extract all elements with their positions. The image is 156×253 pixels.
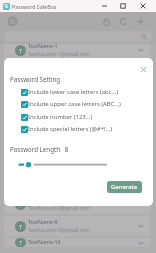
staticText: Password Length 8: [10, 145, 69, 153]
staticText: Include lower case letters (abc...): [28, 88, 119, 96]
button[interactable]: T: [4, 84, 150, 104]
staticText: TestName-1: [28, 44, 58, 49]
staticText: Password Setting: [10, 75, 61, 83]
staticText: Include special letters (@#*!...): [28, 125, 112, 133]
staticText: TestName-5: [28, 130, 58, 137]
staticText: Generate: [111, 183, 138, 191]
button[interactable]: Maximize: [113, 0, 133, 12]
button[interactable]: T: [4, 194, 150, 214]
button[interactable]: T: [4, 128, 150, 148]
staticText: Include upper case letters (ABC...): [28, 100, 121, 108]
staticText: T: [19, 223, 23, 230]
button[interactable]: Add: [132, 13, 149, 30]
staticText: TestAccount-4@gmail.com: [28, 117, 90, 124]
button[interactable]: T: [4, 216, 150, 236]
button[interactable]: Include lower case letters (abc...): [21, 88, 122, 96]
button[interactable]: T: [4, 44, 150, 60]
button[interactable]: Lock: [98, 13, 115, 30]
button[interactable]: T: [4, 172, 150, 192]
staticText: TestAccount-1@gmail.com: [28, 51, 90, 58]
staticText: T: [19, 47, 23, 54]
staticText: T: [19, 201, 23, 208]
staticText: T: [19, 91, 23, 98]
button[interactable]: Generate: [107, 181, 142, 193]
staticText: T: [19, 239, 23, 246]
button[interactable]: Minimize: [96, 0, 113, 12]
staticText: T: [19, 157, 23, 164]
button[interactable]: T: [4, 150, 150, 170]
button[interactable]: Settings: [4, 13, 21, 30]
staticText: TestAccount-8@gmail.com: [28, 205, 90, 212]
staticText: Include number (123...): [28, 113, 93, 121]
button[interactable]: Close: [138, 64, 149, 75]
staticText: T: [19, 113, 23, 120]
button[interactable]: Include special letters (@#*!...): [21, 125, 115, 133]
button[interactable]: Refresh: [115, 13, 132, 30]
button[interactable]: T: [4, 238, 150, 247]
staticText: TestAccount-2@gmail.com: [28, 73, 90, 80]
staticText: TestName-6: [28, 152, 58, 159]
button[interactable]: Include number (123...): [21, 113, 96, 121]
button[interactable]: Include upper case letters (ABC...): [21, 100, 124, 108]
staticText: TestAccount-9@gmail.com: [28, 227, 90, 234]
staticText: TestName-3: [28, 86, 58, 93]
staticText: Password SafeBox: [12, 3, 57, 10]
staticText: TestName-9: [28, 218, 58, 225]
button[interactable]: T: [4, 106, 150, 126]
staticText: TestAccount-6@gmail.com: [28, 161, 90, 168]
button[interactable]: Close: [133, 0, 153, 12]
button[interactable]: T: [4, 62, 150, 82]
staticText: TestName-10: [28, 238, 61, 245]
